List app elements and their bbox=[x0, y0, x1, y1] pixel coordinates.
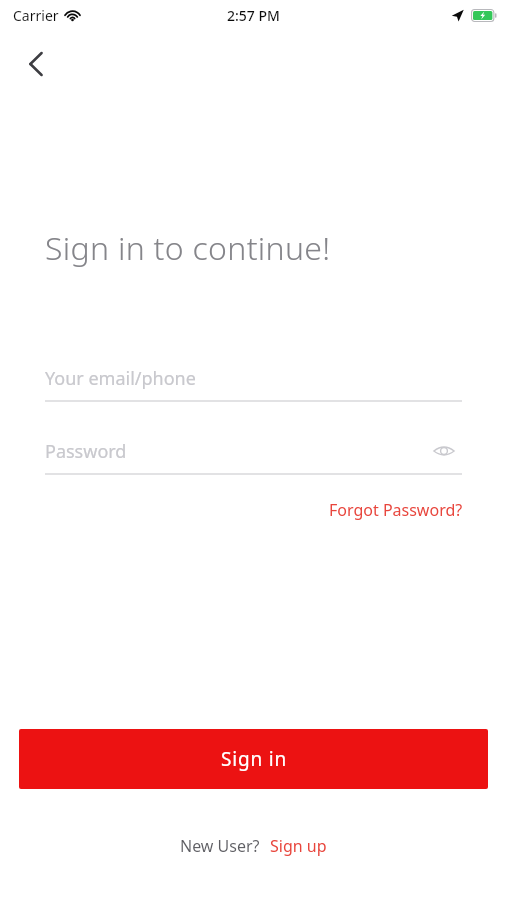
staticText: Sign in to continue! bbox=[45, 226, 331, 270]
button[interactable]: Sign in bbox=[19, 729, 488, 789]
staticText: 2:57 PM bbox=[227, 6, 280, 25]
staticText: Forgot Password? bbox=[329, 499, 463, 521]
staticText: Password bbox=[45, 439, 127, 464]
staticText: Sign in bbox=[221, 746, 287, 772]
button[interactable]: Show password bbox=[426, 433, 462, 469]
staticText: New User? bbox=[180, 835, 260, 857]
staticText: Your email/phone bbox=[45, 366, 196, 391]
button[interactable]: Sign up bbox=[270, 835, 327, 857]
staticText: Carrier bbox=[13, 6, 59, 25]
button[interactable]: Your email/phone bbox=[45, 354, 462, 402]
button[interactable]: Password bbox=[45, 427, 462, 475]
staticText: Sign up bbox=[270, 835, 327, 857]
button[interactable]: Back bbox=[12, 41, 58, 87]
button[interactable]: Forgot Password? bbox=[298, 494, 463, 526]
